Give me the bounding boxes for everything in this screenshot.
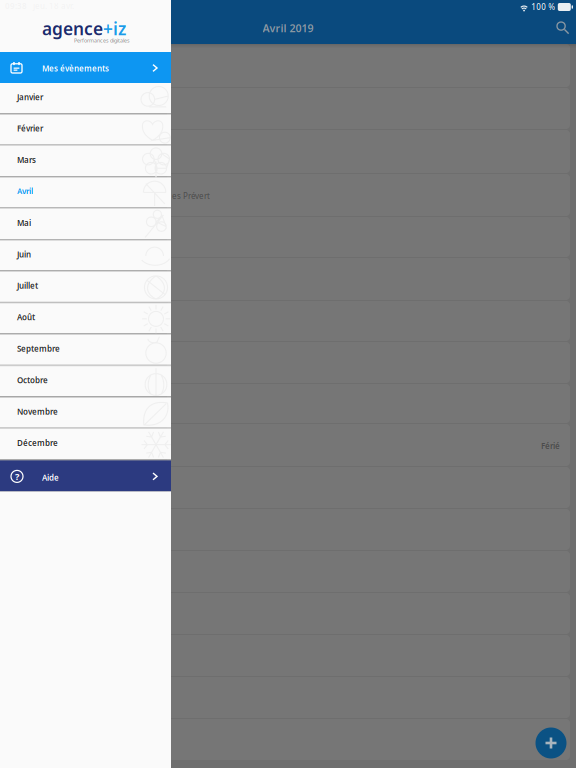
button[interactable]: ? bbox=[0, 460, 171, 491]
staticText: Décembre bbox=[17, 438, 58, 448]
staticText: es Prévert bbox=[172, 190, 210, 201]
button[interactable]: Mai bbox=[0, 209, 171, 240]
staticText: Mai bbox=[17, 217, 31, 228]
staticText: Février bbox=[17, 123, 43, 134]
staticText: Avril 2019 bbox=[262, 21, 313, 35]
staticText: Novembre bbox=[17, 406, 58, 417]
staticText: Férié bbox=[541, 440, 560, 451]
staticText: Mes évènements bbox=[42, 63, 109, 74]
staticText: Octobre bbox=[17, 375, 48, 385]
button[interactable]: Jour bbox=[171, 719, 576, 761]
button[interactable]: Mars bbox=[0, 146, 171, 177]
staticText: Août bbox=[17, 312, 35, 322]
staticText: Aide bbox=[42, 472, 59, 483]
button[interactable]: Novembre bbox=[0, 397, 171, 429]
staticText: Juin bbox=[17, 249, 31, 260]
staticText: +iz bbox=[103, 17, 126, 40]
staticText: Septembre bbox=[17, 343, 60, 354]
staticText: Avril bbox=[17, 186, 33, 197]
button[interactable]: Add event bbox=[531, 723, 571, 763]
staticText: 100 % bbox=[531, 2, 555, 12]
button[interactable]: Décembre bbox=[0, 429, 171, 460]
staticText: agence bbox=[42, 17, 103, 40]
button[interactable]: Octobre bbox=[0, 366, 171, 397]
button[interactable]: Avril bbox=[0, 177, 171, 209]
button[interactable]: Janvier bbox=[0, 83, 171, 114]
staticText: Performances digitales bbox=[74, 37, 130, 44]
staticText: ? bbox=[15, 470, 19, 483]
button[interactable]: Juin bbox=[0, 240, 171, 272]
staticText: Juillet bbox=[17, 280, 38, 291]
staticText: Mars bbox=[17, 155, 36, 165]
staticText: Janvier bbox=[17, 92, 43, 102]
button[interactable]: Search bbox=[551, 16, 575, 40]
button[interactable]: Juillet bbox=[0, 272, 171, 303]
button[interactable]: Février bbox=[0, 114, 171, 146]
button[interactable]: Mes évènements bbox=[0, 52, 171, 83]
button[interactable]: Août bbox=[0, 303, 171, 335]
button[interactable]: Septembre bbox=[0, 335, 171, 366]
